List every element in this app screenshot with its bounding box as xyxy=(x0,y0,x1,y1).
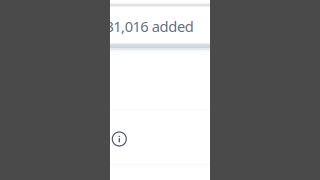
staticText: 31,016 added xyxy=(105,16,194,36)
button[interactable]: Information xyxy=(112,132,126,146)
